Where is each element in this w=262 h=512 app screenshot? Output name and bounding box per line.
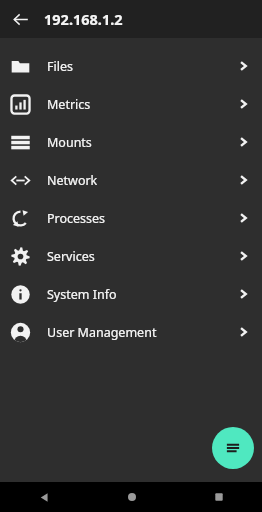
- button[interactable]: Metrics: [0, 85, 262, 123]
- button[interactable]: Menu: [212, 427, 254, 469]
- staticText: Files: [47, 58, 73, 75]
- button[interactable]: Home: [88, 482, 175, 512]
- button[interactable]: Processes: [0, 199, 262, 237]
- button[interactable]: System Info: [0, 275, 262, 313]
- button[interactable]: Back: [6, 5, 34, 33]
- button[interactable]: Recents: [175, 482, 262, 512]
- staticText: Services: [47, 248, 95, 265]
- staticText: 192.168.1.2: [44, 9, 123, 29]
- button[interactable]: Mounts: [0, 123, 262, 161]
- button[interactable]: Network: [0, 161, 262, 199]
- button[interactable]: Back: [0, 482, 88, 512]
- staticText: System Info: [47, 286, 117, 303]
- staticText: Metrics: [47, 96, 91, 113]
- button[interactable]: Services: [0, 237, 262, 275]
- staticText: Mounts: [47, 134, 92, 151]
- button[interactable]: Files: [0, 47, 262, 85]
- button[interactable]: User Management: [0, 313, 262, 351]
- staticText: User Management: [47, 324, 157, 341]
- staticText: Processes: [47, 210, 106, 227]
- staticText: Network: [47, 172, 98, 189]
